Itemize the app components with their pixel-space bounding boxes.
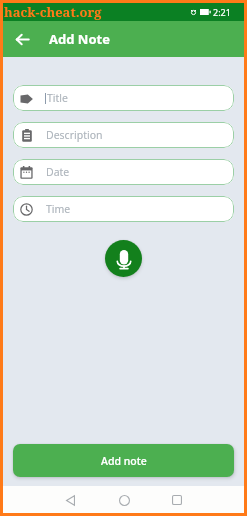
- staticText: Title: [47, 91, 68, 105]
- staticText: Time: [46, 202, 71, 216]
- staticText: Add note: [101, 454, 147, 468]
- button[interactable]: Record voice note: [105, 240, 142, 277]
- button[interactable]: Back: [10, 27, 34, 51]
- button[interactable]: Add note: [13, 444, 234, 477]
- button[interactable]: Back: [58, 488, 82, 512]
- button[interactable]: Time: [13, 196, 234, 222]
- staticText: Date: [46, 165, 70, 179]
- staticText: hack-cheat.org: [4, 3, 102, 21]
- staticText: Description: [46, 128, 103, 142]
- button[interactable]: Description: [13, 122, 234, 148]
- staticText: Add Note: [49, 30, 110, 48]
- staticText: 2:21: [213, 6, 231, 18]
- button[interactable]: Title: [13, 85, 234, 111]
- button[interactable]: Home: [112, 488, 136, 512]
- button[interactable]: Date: [13, 159, 234, 185]
- button[interactable]: Recent apps: [165, 488, 189, 512]
